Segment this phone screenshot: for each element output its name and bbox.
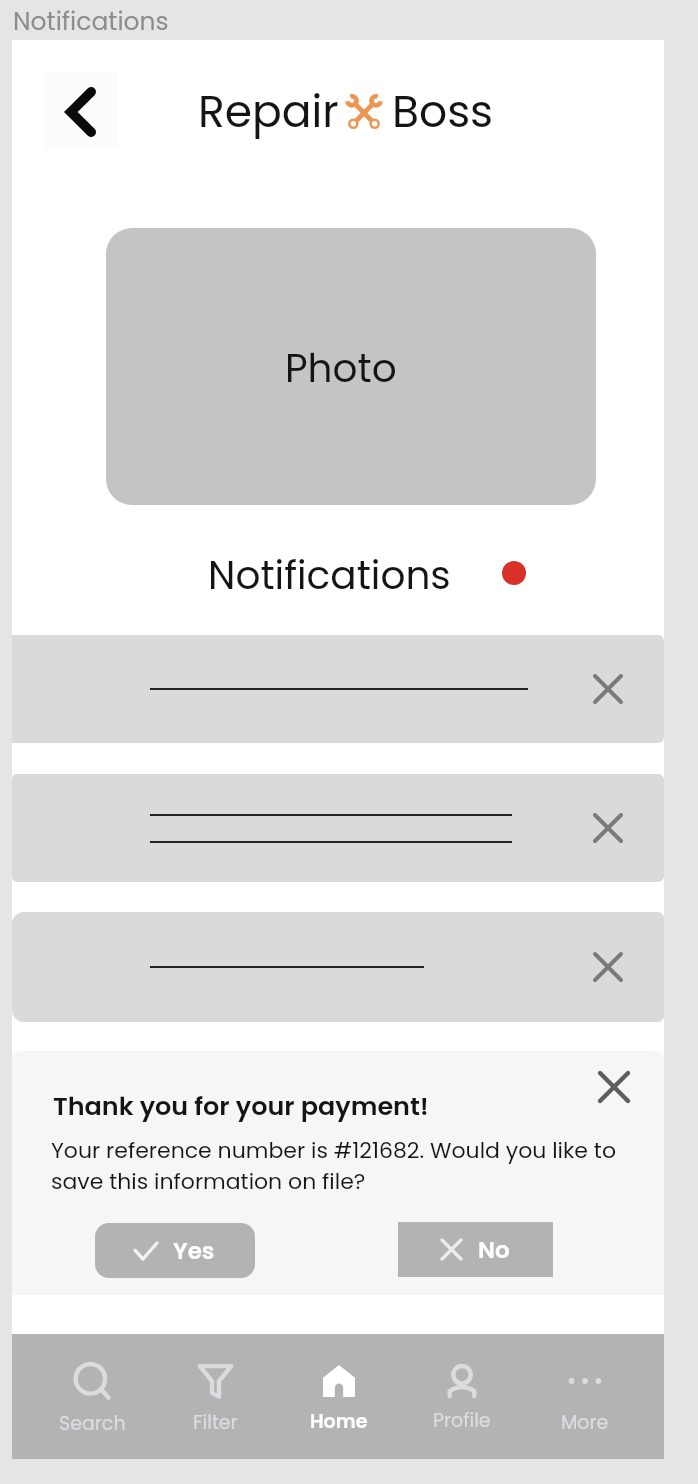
staticText: Photo [285,341,397,396]
button[interactable]: Dismiss notification [12,774,664,882]
button[interactable]: More [523,1334,646,1459]
staticText: Profile [433,1407,491,1434]
staticText: Filter [193,1409,238,1436]
staticText: Search [59,1410,126,1437]
button[interactable]: Home [277,1334,400,1459]
button[interactable]: Dismiss notification [586,667,630,711]
button[interactable]: Dismiss notification [586,806,630,850]
staticText: Yes [173,1235,215,1267]
staticText: Boss [392,81,494,143]
button[interactable]: Dismiss notification [12,635,664,743]
staticText: Notifications [13,4,169,39]
button[interactable]: Search [30,1334,154,1459]
button[interactable]: Dismiss notification [12,912,664,1022]
button[interactable]: Profile [400,1334,523,1459]
button[interactable]: Filter [154,1334,277,1459]
button[interactable]: Close [590,1063,638,1111]
staticText: No [478,1234,510,1266]
staticText: Repair [198,81,339,143]
button[interactable]: Back [44,71,118,149]
staticText: Notifications [208,548,451,603]
staticText: Home [310,1408,368,1435]
button[interactable]: Yes [95,1223,255,1278]
staticText: Your reference number is #121682. Would … [51,1135,616,1196]
staticText: Thank you for your payment! [53,1088,429,1124]
button[interactable]: Dismiss notification [586,945,630,989]
staticText: More [561,1409,609,1436]
button[interactable]: No [398,1222,553,1277]
